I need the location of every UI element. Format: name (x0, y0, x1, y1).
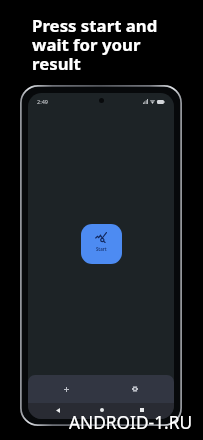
staticText: Press start and wait for your result (32, 14, 158, 75)
staticText: Start (96, 246, 107, 252)
staticText: 2:49 (37, 98, 48, 105)
button[interactable]: Start (81, 224, 122, 264)
staticText: ANDROID-1.RU (69, 411, 193, 435)
button[interactable]: Settings (101, 375, 174, 403)
button[interactable]: Home (94, 403, 110, 419)
button[interactable]: Back (50, 403, 66, 419)
button[interactable]: Add (28, 375, 101, 403)
button[interactable]: Recents (134, 403, 150, 419)
